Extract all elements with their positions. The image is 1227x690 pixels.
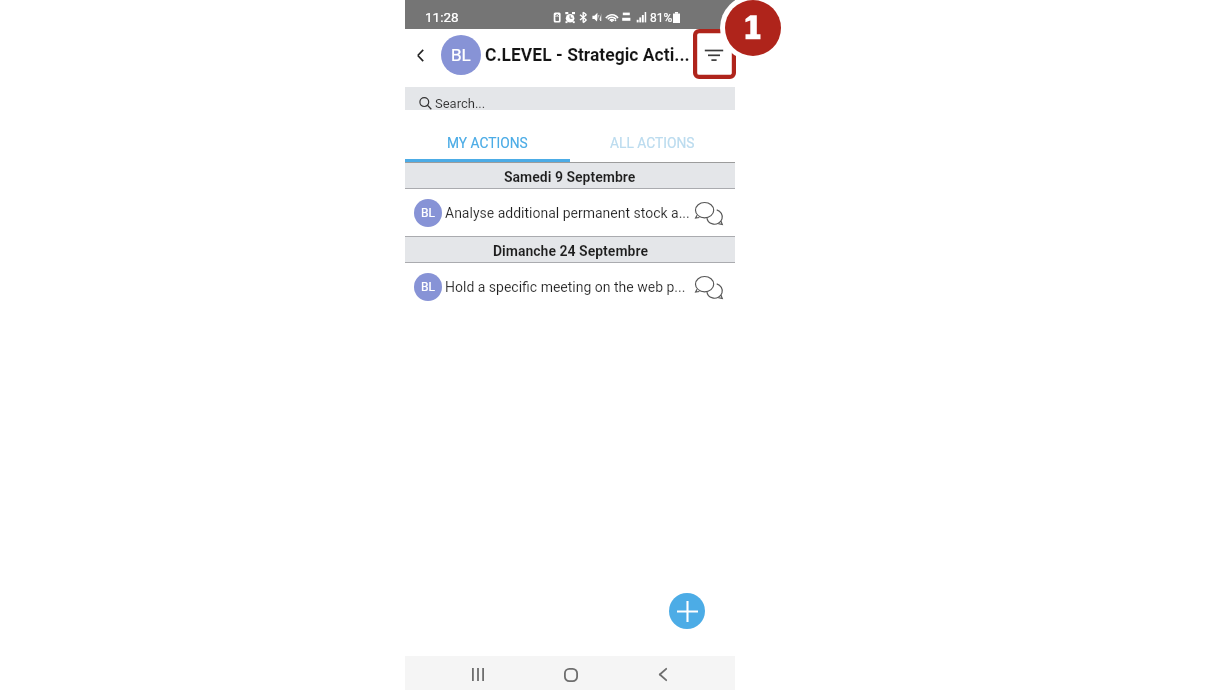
button[interactable]: Home	[524, 656, 617, 690]
staticText: Hold a specific meeting on the web p...	[445, 279, 695, 295]
staticText: BL	[451, 45, 471, 65]
staticText: BL	[421, 206, 435, 220]
button[interactable]: Add action	[669, 593, 705, 629]
staticText: 81%	[650, 11, 673, 25]
button[interactable]: BL	[405, 189, 735, 236]
button[interactable]: Filter	[698, 39, 730, 71]
button[interactable]: Search...	[405, 87, 735, 110]
staticText: MY ACTIONS	[447, 135, 528, 151]
button[interactable]: Back	[407, 42, 433, 68]
staticText: Samedi 9 Septembre	[504, 169, 636, 185]
button[interactable]: MY ACTIONS	[405, 110, 570, 162]
staticText: 11:28	[425, 9, 459, 25]
button[interactable]: Recents	[432, 656, 524, 690]
button[interactable]: BL	[441, 35, 481, 75]
staticText: ALL ACTIONS	[610, 135, 695, 151]
button[interactable]: BL	[405, 263, 735, 310]
button[interactable]: ALL ACTIONS	[570, 110, 735, 162]
staticText: BL	[421, 280, 435, 294]
staticText: Search...	[435, 96, 486, 111]
staticText: Dimanche 24 Septembre	[493, 243, 648, 259]
button[interactable]: Back	[617, 656, 709, 690]
staticText: C.LEVEL - Strategic Acti...	[485, 45, 690, 66]
staticText: Analyse additional permanent stock a...	[445, 205, 695, 221]
